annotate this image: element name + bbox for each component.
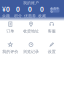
staticText: 设置	[48, 49, 56, 54]
button[interactable]: 0	[24, 5, 36, 18]
staticText: 0	[16, 5, 20, 13]
button[interactable]: 会员中心	[50, 7, 59, 12]
button[interactable]: 我的评价	[0, 42, 21, 54]
staticText: 优惠券	[24, 13, 36, 18]
staticText: 收藏	[38, 13, 46, 18]
button[interactable]: 收货地址	[21, 21, 41, 34]
button[interactable]: 客服	[41, 21, 62, 34]
button[interactable]: 0	[36, 5, 48, 18]
staticText: 余额	[2, 13, 10, 18]
button[interactable]: 0	[12, 5, 24, 18]
staticText: 收货地址	[23, 29, 39, 34]
staticText: 浏览记录	[23, 49, 39, 54]
button[interactable]: ¥0	[0, 5, 12, 18]
staticText: 我的账户	[23, 0, 39, 5]
staticText: 0	[40, 5, 44, 13]
staticText: 我的评价	[2, 49, 18, 54]
staticText: 订单	[6, 29, 14, 34]
button[interactable]: 设置	[41, 42, 62, 54]
button[interactable]: 浏览记录	[21, 42, 41, 54]
staticText: 0	[28, 5, 32, 13]
staticText: 积分	[14, 13, 22, 18]
staticText: 客服	[48, 29, 56, 34]
staticText: 会员中心	[50, 7, 59, 13]
staticText: ¥0	[2, 5, 10, 13]
button[interactable]: 订单	[0, 21, 21, 34]
